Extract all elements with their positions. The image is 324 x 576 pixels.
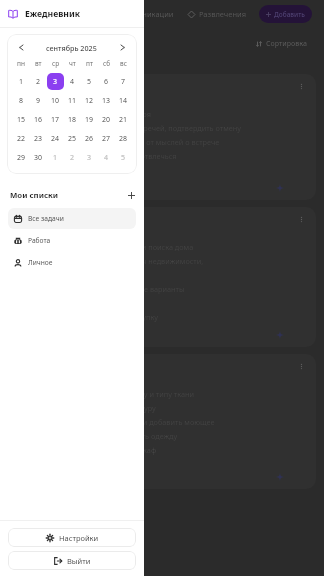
button[interactable]: Следующий месяц [116, 41, 129, 54]
staticText: Определить основные критерии поиска дома [31, 242, 194, 252]
button[interactable]: 10 [47, 92, 64, 109]
button[interactable]: 8 [13, 92, 30, 109]
staticText: 2 [70, 153, 75, 163]
button[interactable]: Покупка дома [8, 207, 316, 347]
staticText: вс [120, 59, 127, 68]
button[interactable]: 13 [98, 92, 115, 109]
staticText: Развлечения [199, 9, 247, 19]
button[interactable]: Добавить [259, 5, 312, 23]
staticText: 4 [104, 153, 109, 163]
button[interactable]: AI [274, 329, 285, 340]
button[interactable]: 2 [30, 73, 47, 90]
button[interactable]: Настройки [8, 528, 136, 547]
button[interactable]: 15 [13, 111, 30, 128]
button[interactable]: 16 [30, 111, 47, 128]
staticText: 22 [17, 134, 26, 144]
button[interactable]: Выполнено [17, 166, 25, 174]
button[interactable]: 27 [98, 130, 115, 147]
staticText: Подготовить документы на покупку [31, 312, 159, 322]
button[interactable]: Коммуникации [100, 5, 181, 23]
button[interactable]: Работа [8, 230, 136, 251]
button[interactable]: 17 [47, 111, 64, 128]
button[interactable]: 1 [47, 149, 64, 166]
button[interactable]: Ещё [296, 81, 307, 92]
button[interactable]: Предыдущий месяц [15, 41, 28, 54]
button[interactable]: Выполнено [17, 138, 25, 146]
staticText: Личное [28, 258, 53, 267]
button[interactable]: 14 [115, 92, 132, 109]
button[interactable]: 7 [115, 73, 132, 90]
button[interactable]: 2 [64, 149, 81, 166]
button[interactable]: 1 [13, 73, 30, 90]
staticText: Посмотреть вживую отобранные варианты [31, 284, 185, 294]
button[interactable]: AI [274, 182, 285, 193]
staticText: 28 [119, 134, 128, 144]
button[interactable]: Ещё [296, 214, 307, 225]
staticText: 4 [70, 77, 75, 87]
staticText: Загрузить стиральную машину и добавить м… [31, 417, 215, 427]
button[interactable]: 5 [115, 149, 132, 166]
button[interactable]: 26 [81, 130, 98, 147]
button[interactable]: Выполнено [17, 257, 25, 265]
button[interactable]: 23 [30, 130, 47, 147]
button[interactable]: 28 [115, 130, 132, 147]
button[interactable]: Отменённая встреча [8, 74, 316, 200]
staticText: 29 [17, 153, 26, 163]
button[interactable]: 20 [98, 111, 115, 128]
button[interactable]: Развлечения [181, 5, 254, 23]
button[interactable]: Выйти [8, 551, 136, 570]
button[interactable]: 5 [81, 73, 98, 90]
button[interactable]: 18 [64, 111, 81, 128]
button[interactable]: 6 [98, 73, 115, 90]
staticText: 1 [53, 153, 58, 163]
button[interactable]: Выполнено [17, 152, 25, 160]
button[interactable]: Выполнено [17, 110, 25, 118]
button[interactable]: 19 [81, 111, 98, 128]
button[interactable]: Выполнено [17, 243, 25, 251]
button[interactable]: 25 [64, 130, 81, 147]
button[interactable]: 21 [115, 111, 132, 128]
button[interactable]: 4 [98, 149, 115, 166]
staticText: 23 [34, 134, 43, 144]
button[interactable]: Сортировка [254, 37, 310, 51]
staticText: Аккуратно развесить и высушить одежду [31, 431, 178, 441]
button[interactable]: 12 [81, 92, 98, 109]
staticText: Сделать паузу, чтобы отвлечься от мыслей… [31, 137, 220, 147]
staticText: 12 [85, 96, 94, 106]
staticText: 7 [121, 77, 126, 87]
button[interactable]: 11 [64, 92, 81, 109]
button[interactable]: Добавить список [125, 189, 137, 201]
staticText: Найти для себя другой способ отвлечься [31, 151, 177, 161]
button[interactable]: 22 [13, 130, 30, 147]
button[interactable]: Стирка белья [8, 354, 316, 489]
button[interactable]: 4 [64, 73, 81, 90]
button[interactable]: 24 [47, 130, 64, 147]
staticText: ср [52, 59, 60, 68]
button[interactable]: Все задачи [8, 208, 136, 229]
button[interactable]: Личное [8, 252, 136, 273]
staticText: 10 [51, 96, 60, 106]
button[interactable]: 3 [47, 73, 64, 90]
button[interactable]: AI [274, 471, 285, 482]
staticText: вт [35, 59, 42, 68]
staticText: 15 [17, 115, 26, 125]
button[interactable]: 30 [30, 149, 47, 166]
button[interactable]: Ещё [296, 361, 307, 372]
staticText: Выйти [67, 556, 91, 566]
button[interactable]: 3 [81, 149, 98, 166]
button[interactable]: 9 [30, 92, 47, 109]
staticText: 20 [102, 115, 111, 125]
staticText: 5 [87, 77, 92, 87]
button[interactable]: 29 [13, 149, 30, 166]
